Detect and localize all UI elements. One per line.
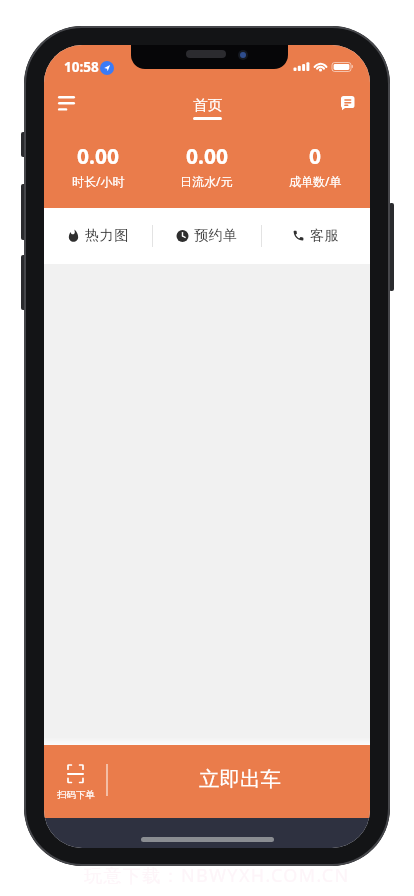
staticText: 首页	[193, 96, 222, 114]
staticText: 玩意下载：NBWYXH.COM.CN	[84, 863, 350, 888]
staticText: 成单数/单	[289, 173, 342, 189]
button[interactable]: 预约单	[152, 208, 261, 264]
staticText: 0	[309, 142, 322, 171]
staticText: 0.00	[186, 142, 228, 171]
button[interactable]: 立即出车	[108, 745, 370, 818]
button[interactable]	[50, 89, 84, 123]
button[interactable]: 客服	[261, 208, 370, 264]
button[interactable]	[331, 86, 365, 120]
button[interactable]: 0.00	[152, 142, 261, 189]
staticText: 时长/小时	[72, 173, 125, 189]
staticText: 0.00	[77, 142, 119, 171]
button[interactable]: 0.00	[44, 142, 152, 189]
button[interactable]: 扫码下单	[50, 753, 102, 810]
button[interactable]: 热力图	[44, 208, 152, 264]
staticText: 客服	[310, 227, 340, 245]
staticText: 预约单	[194, 227, 238, 245]
button[interactable]: 0	[261, 142, 370, 189]
button[interactable]: 首页	[177, 93, 237, 125]
staticText: 扫码下单	[57, 789, 95, 801]
staticText: 10:58	[64, 58, 99, 76]
staticText: 日流水/元	[180, 173, 233, 189]
staticText: 立即出车	[199, 766, 281, 792]
staticText: 热力图	[85, 227, 129, 245]
